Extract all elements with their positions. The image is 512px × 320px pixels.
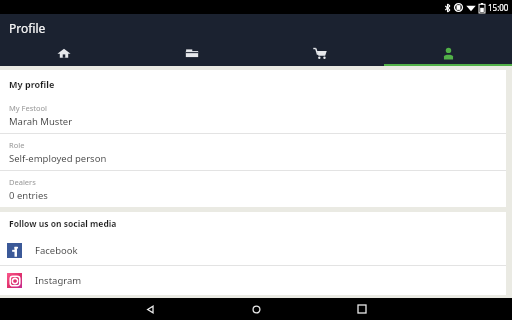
- button[interactable]: Role: [0, 134, 506, 170]
- staticText: 15:00: [488, 2, 509, 13]
- button[interactable]: Recent apps: [309, 298, 415, 320]
- button[interactable]: Home: [203, 298, 309, 320]
- staticText: Instagram: [35, 274, 82, 287]
- staticText: 0 entries: [9, 189, 48, 202]
- button[interactable]: My Festool: [0, 97, 506, 133]
- button[interactable]: Home: [0, 42, 128, 64]
- staticText: My Festool: [9, 103, 48, 113]
- staticText: Profile: [9, 20, 46, 36]
- staticText: My profile: [9, 78, 55, 90]
- staticText: Self-employed person: [9, 152, 107, 165]
- button[interactable]: Profile: [384, 42, 512, 64]
- button[interactable]: Catalog: [128, 42, 256, 64]
- staticText: Dealers: [9, 177, 36, 187]
- staticText: Follow us on social media: [9, 218, 117, 230]
- button[interactable]: Dealers: [0, 171, 506, 207]
- staticText: Marah Muster: [9, 115, 73, 128]
- button[interactable]: Cart: [256, 42, 384, 64]
- staticText: Role: [9, 140, 25, 150]
- staticText: Facebook: [35, 244, 78, 257]
- button[interactable]: Back: [97, 298, 203, 320]
- button[interactable]: Facebook: [0, 236, 506, 265]
- button[interactable]: Instagram: [0, 266, 506, 295]
